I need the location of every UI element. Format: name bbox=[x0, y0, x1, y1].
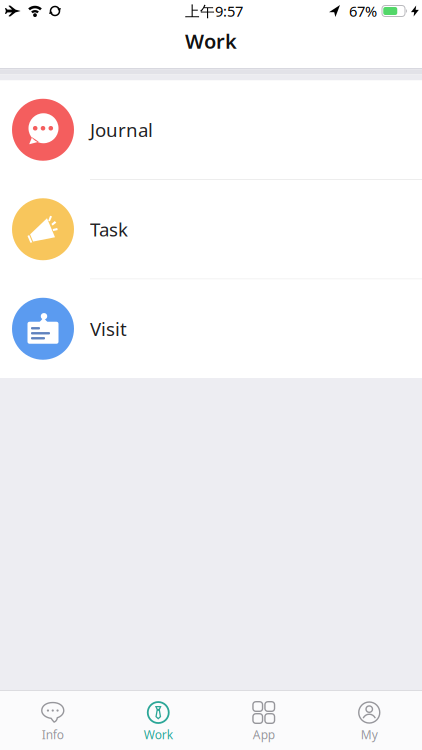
staticText: My bbox=[361, 726, 378, 742]
button[interactable]: My bbox=[316, 694, 422, 746]
staticText: Task bbox=[90, 217, 128, 242]
staticText: Journal bbox=[90, 117, 153, 142]
button[interactable]: Visit bbox=[0, 279, 422, 378]
button[interactable]: Task bbox=[0, 180, 422, 279]
button[interactable]: Work bbox=[105, 694, 211, 746]
staticText: Work bbox=[185, 28, 237, 54]
staticText: 上午9:57 bbox=[185, 1, 243, 21]
button[interactable]: App bbox=[211, 694, 316, 746]
button[interactable]: Journal bbox=[0, 80, 422, 180]
staticText: 67% bbox=[349, 1, 377, 21]
button[interactable]: Info bbox=[0, 694, 105, 746]
staticText: Work bbox=[144, 726, 173, 742]
staticText: App bbox=[253, 726, 275, 742]
staticText: Visit bbox=[90, 316, 127, 341]
staticText: Info bbox=[42, 726, 64, 742]
